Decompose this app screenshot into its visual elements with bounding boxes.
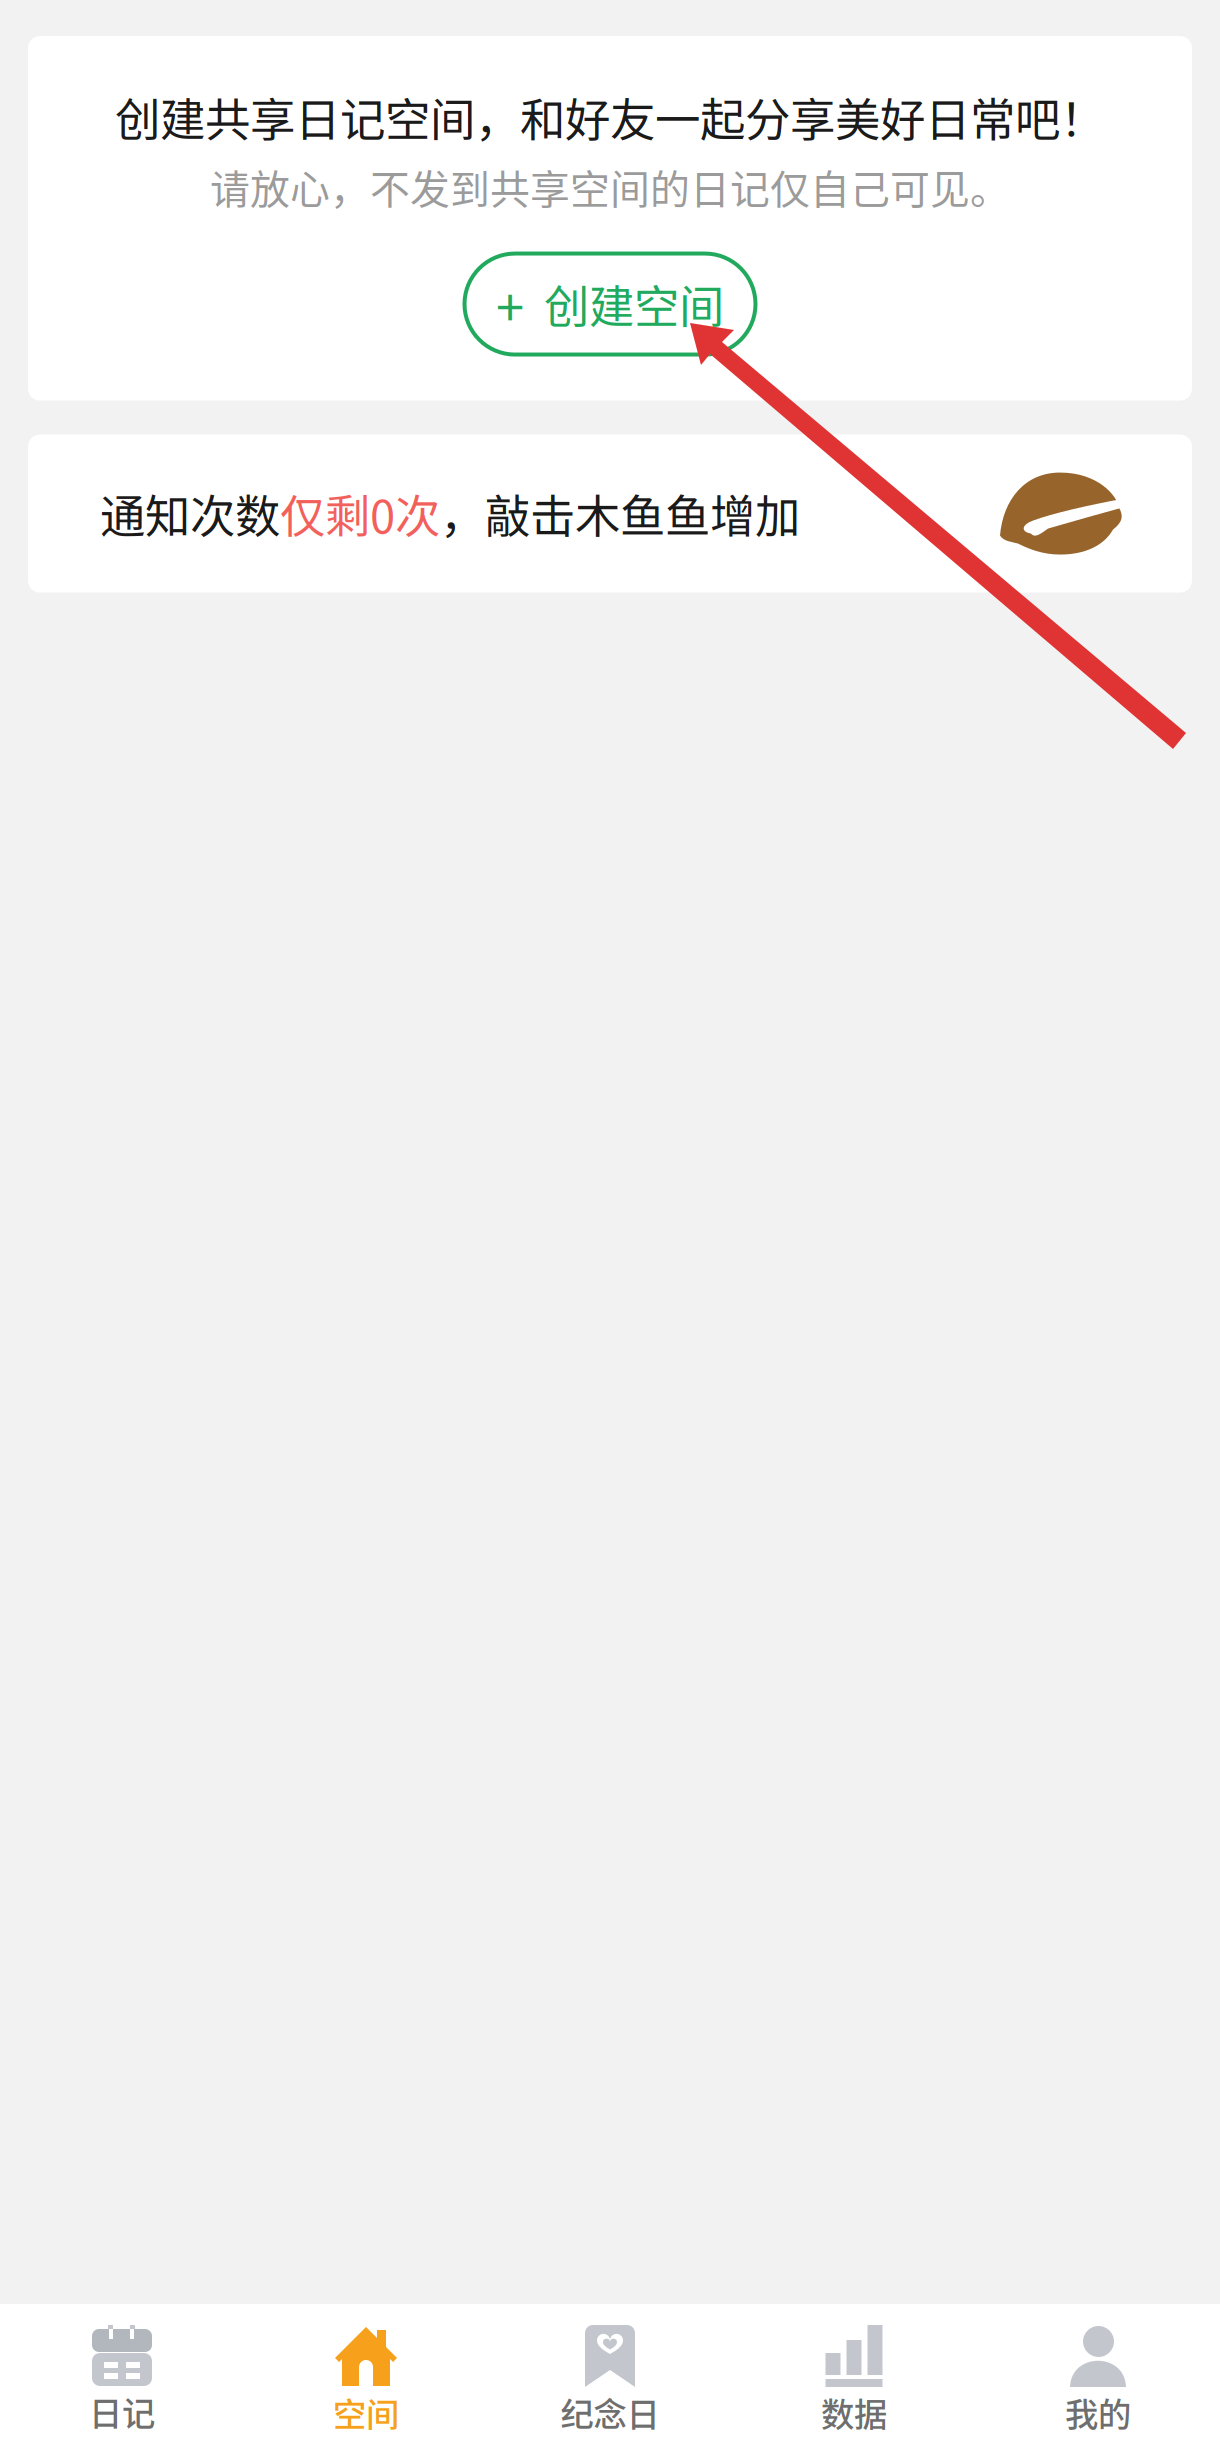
staticText: +: [496, 267, 524, 341]
staticText: 我的: [1065, 2388, 1131, 2436]
button[interactable]: 数据: [732, 2304, 976, 2462]
staticText: 日记: [89, 2387, 155, 2435]
staticText: 创建共享日记空间，和好友一起分享美好日常吧！: [115, 84, 1105, 150]
button[interactable]: 纪念日: [488, 2304, 732, 2462]
button[interactable]: 日记: [0, 2304, 244, 2462]
button[interactable]: 空间: [244, 2304, 488, 2462]
staticText: 数据: [821, 2388, 887, 2436]
staticText: 仅剩0次: [280, 481, 440, 546]
staticText: 纪念日: [560, 2388, 659, 2436]
staticText: 请放心，不发到共享空间的日记仅自己可见。: [210, 158, 1010, 215]
button[interactable]: +: [464, 254, 755, 355]
staticText: 通知次数: [100, 481, 280, 546]
staticText: 创建空间: [544, 271, 724, 337]
button[interactable]: 我的: [976, 2304, 1220, 2462]
staticText: 空间: [333, 2388, 399, 2436]
staticText: ，敲击木鱼鱼增加: [440, 481, 800, 546]
